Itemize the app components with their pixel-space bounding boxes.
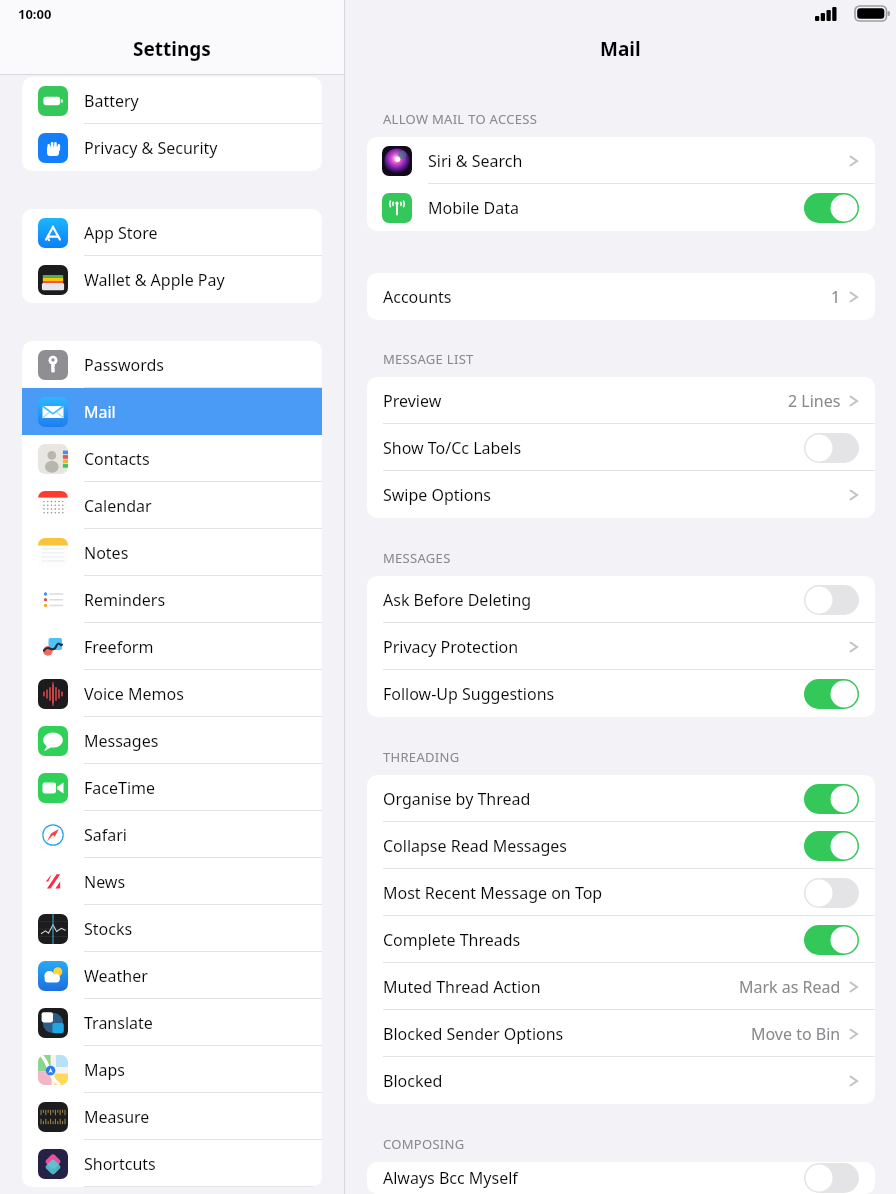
staticText: Measure: [84, 1106, 150, 1128]
staticText: Siri & Search: [428, 150, 523, 172]
button[interactable]: Shortcuts: [22, 1140, 322, 1187]
button[interactable]: Mail: [22, 388, 322, 435]
staticText: Safari: [84, 824, 127, 846]
button[interactable]: Follow-Up Suggestions: [367, 670, 875, 717]
staticText: Mail: [84, 401, 116, 423]
button[interactable]: Off: [804, 878, 859, 908]
button[interactable]: Off: [804, 1163, 859, 1193]
button[interactable]: Show To/Cc Labels: [367, 424, 875, 471]
staticText: ALLOW MAIL TO ACCESS: [383, 110, 538, 128]
staticText: Passwords: [84, 354, 165, 376]
staticText: Settings: [133, 36, 211, 62]
button[interactable]: Most Recent Message on Top: [367, 869, 875, 916]
staticText: FaceTime: [84, 777, 155, 799]
staticText: Blocked: [383, 1070, 443, 1092]
staticText: Swipe Options: [383, 484, 491, 506]
staticText: Maps: [84, 1059, 125, 1081]
button[interactable]: News: [22, 858, 322, 905]
button[interactable]: Privacy Protection: [367, 623, 875, 670]
staticText: THREADING: [383, 748, 460, 766]
button[interactable]: Siri & Search: [367, 137, 875, 184]
staticText: Freeform: [84, 636, 154, 658]
staticText: Blocked Sender Options: [383, 1023, 564, 1045]
staticText: Show To/Cc Labels: [383, 437, 522, 459]
button[interactable]: Off: [804, 433, 859, 463]
button[interactable]: On: [804, 925, 859, 955]
staticText: Accounts: [383, 286, 452, 308]
button[interactable]: Battery: [22, 77, 322, 124]
staticText: Move to Bin: [751, 1023, 841, 1045]
staticText: Contacts: [84, 448, 150, 470]
staticText: 10:00: [18, 5, 52, 23]
staticText: Follow-Up Suggestions: [383, 683, 555, 705]
button[interactable]: Organise by Thread: [367, 775, 875, 822]
staticText: Complete Threads: [383, 929, 521, 951]
staticText: COMPOSING: [383, 1135, 465, 1153]
button[interactable]: Weather: [22, 952, 322, 999]
button[interactable]: On: [804, 193, 859, 223]
button[interactable]: Stocks: [22, 905, 322, 952]
button[interactable]: Blocked: [367, 1057, 875, 1104]
staticText: Always Bcc Myself: [383, 1167, 518, 1189]
button[interactable]: Accounts: [367, 273, 875, 320]
staticText: Ask Before Deleting: [383, 589, 532, 611]
button[interactable]: Muted Thread Action: [367, 963, 875, 1010]
button[interactable]: Measure: [22, 1093, 322, 1140]
button[interactable]: Always Bcc Myself: [367, 1162, 875, 1194]
staticText: Battery: [84, 90, 139, 112]
button[interactable]: On: [804, 679, 859, 709]
staticText: News: [84, 871, 126, 893]
button[interactable]: On: [804, 784, 859, 814]
button[interactable]: Preview: [367, 377, 875, 424]
staticText: Preview: [383, 390, 442, 412]
staticText: Translate: [84, 1012, 153, 1034]
staticText: App Store: [84, 222, 158, 244]
staticText: Notes: [84, 542, 129, 564]
staticText: Organise by Thread: [383, 788, 531, 810]
staticText: Collapse Read Messages: [383, 835, 568, 857]
button[interactable]: Voice Memos: [22, 670, 322, 717]
button[interactable]: Messages: [22, 717, 322, 764]
button[interactable]: Freeform: [22, 623, 322, 670]
staticText: Voice Memos: [84, 683, 184, 705]
staticText: Privacy & Security: [84, 137, 218, 159]
button[interactable]: App Store: [22, 209, 322, 256]
staticText: Mark as Read: [739, 976, 841, 998]
staticText: Mail: [600, 36, 641, 62]
staticText: MESSAGE LIST: [383, 350, 474, 368]
button[interactable]: Wallet & Apple Pay: [22, 256, 322, 303]
button[interactable]: Complete Threads: [367, 916, 875, 963]
staticText: Privacy Protection: [383, 636, 519, 658]
button[interactable]: Calendar: [22, 482, 322, 529]
button[interactable]: FaceTime: [22, 764, 322, 811]
staticText: Mobile Data: [428, 197, 519, 219]
staticText: Messages: [84, 730, 159, 752]
button[interactable]: Ask Before Deleting: [367, 576, 875, 623]
button[interactable]: Swipe Options: [367, 471, 875, 518]
button[interactable]: Passwords: [22, 341, 322, 388]
button[interactable]: Safari: [22, 811, 322, 858]
staticText: MESSAGES: [383, 549, 451, 567]
button[interactable]: Collapse Read Messages: [367, 822, 875, 869]
button[interactable]: Maps: [22, 1046, 322, 1093]
button[interactable]: Reminders: [22, 576, 322, 623]
staticText: Most Recent Message on Top: [383, 882, 603, 904]
staticText: Shortcuts: [84, 1153, 156, 1175]
button[interactable]: Off: [804, 585, 859, 615]
button[interactable]: Mobile Data: [367, 184, 875, 231]
staticText: Calendar: [84, 495, 152, 517]
button[interactable]: On: [804, 831, 859, 861]
button[interactable]: Translate: [22, 999, 322, 1046]
button[interactable]: Blocked Sender Options: [367, 1010, 875, 1057]
staticText: Weather: [84, 965, 148, 987]
button[interactable]: Contacts: [22, 435, 322, 482]
staticText: Reminders: [84, 589, 166, 611]
button[interactable]: Notes: [22, 529, 322, 576]
staticText: Wallet & Apple Pay: [84, 269, 225, 291]
staticText: 2 Lines: [788, 390, 841, 412]
staticText: Stocks: [84, 918, 133, 940]
button[interactable]: Privacy & Security: [22, 124, 322, 171]
staticText: Muted Thread Action: [383, 976, 541, 998]
staticText: 1: [831, 286, 841, 308]
